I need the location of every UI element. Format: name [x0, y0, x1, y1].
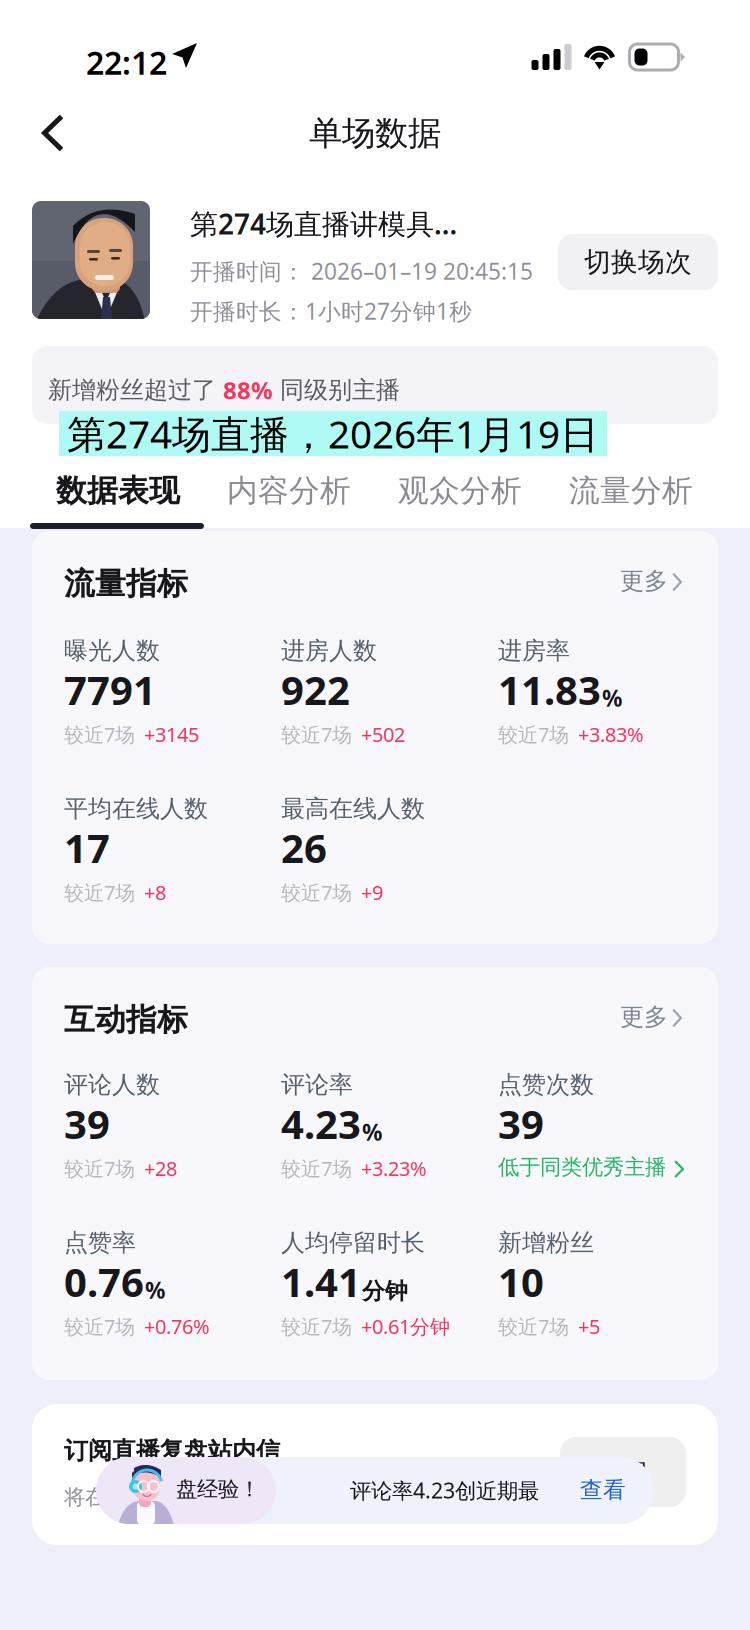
staticText: 较近7场: [281, 1155, 352, 1182]
staticText: 较近7场: [498, 1313, 569, 1340]
button[interactable]: 流量分析: [543, 472, 719, 534]
staticText: 22:12: [86, 41, 167, 83]
button[interactable]: 观众分析: [372, 472, 548, 534]
staticText: 流量分析: [569, 472, 693, 510]
staticText: 新增粉丝超过了: [48, 375, 223, 405]
staticText: +8: [144, 879, 166, 906]
staticText: 开播时间： 2026–01–19 20:45:15: [190, 256, 533, 286]
staticText: 10: [498, 1255, 544, 1308]
staticText: 最高在线人数: [281, 794, 425, 823]
staticText: 更多: [620, 1002, 668, 1032]
staticText: 平均在线人数: [64, 794, 208, 823]
staticText: 11.83: [498, 663, 601, 716]
staticText: %: [145, 1275, 165, 1305]
staticText: 订阅直播复盘站内信: [64, 1436, 280, 1465]
staticText: 同级别主播: [273, 375, 400, 405]
staticText: +28: [144, 1155, 177, 1182]
staticText: +3.83%: [578, 721, 644, 748]
staticText: 评论率4.23创近期最: [350, 1476, 539, 1504]
staticText: 观众分析: [398, 472, 522, 510]
staticText: 较近7场: [281, 879, 352, 906]
staticText: +0.61分钟: [361, 1313, 450, 1340]
staticText: 将在每场直播结束后推送: [64, 1484, 295, 1510]
staticText: 4.23: [281, 1097, 361, 1150]
staticText: 较近7场: [498, 721, 569, 748]
staticText: +9: [361, 879, 383, 906]
staticText: 低于同类优秀主播: [498, 1154, 666, 1180]
staticText: +3145: [144, 721, 199, 748]
staticText: 39: [64, 1097, 110, 1150]
staticText: 较近7场: [281, 1313, 352, 1340]
staticText: 17: [64, 821, 110, 874]
staticText: 进房人数: [281, 636, 377, 665]
button[interactable]: 更多: [610, 999, 682, 1035]
staticText: 单场数据: [309, 113, 441, 154]
staticText: 查看: [580, 1476, 626, 1504]
staticText: 进房率: [498, 636, 570, 665]
staticText: 26: [281, 821, 327, 874]
staticText: 较近7场: [64, 1313, 135, 1340]
staticText: %: [602, 683, 622, 713]
staticText: 较近7场: [64, 721, 135, 748]
staticText: 0.76: [64, 1255, 144, 1308]
staticText: +5: [578, 1313, 600, 1340]
staticText: 评论人数: [64, 1070, 160, 1099]
staticText: 评论率: [281, 1070, 353, 1099]
staticText: 第274场直播，2026年1月19日: [67, 408, 599, 459]
staticText: 88%: [223, 374, 273, 406]
staticText: 流量指标: [64, 565, 188, 603]
staticText: 1.41: [281, 1255, 361, 1308]
button[interactable]: 内容分析: [201, 472, 377, 534]
staticText: 7791: [64, 663, 156, 716]
staticText: 分钟: [362, 1277, 408, 1305]
staticText: 切换场次: [584, 246, 692, 278]
staticText: 较近7场: [281, 721, 352, 748]
staticText: +3.23%: [361, 1155, 427, 1182]
staticText: 曝光人数: [64, 636, 160, 665]
staticText: 盘经验！: [176, 1476, 260, 1502]
staticText: +0.76%: [144, 1313, 210, 1340]
staticText: 互动指标: [64, 1001, 188, 1039]
staticText: %: [362, 1117, 382, 1147]
button[interactable]: 数据表现: [30, 472, 206, 534]
button[interactable]: 查看: [573, 1470, 633, 1510]
button[interactable]: 更多: [610, 563, 682, 599]
staticText: 39: [498, 1097, 544, 1150]
staticText: 开播时长：1小时27分钟1秒: [190, 296, 472, 326]
staticText: 点赞次数: [498, 1070, 594, 1099]
staticText: 新增粉丝: [498, 1228, 594, 1257]
staticText: 数据表现: [56, 472, 180, 510]
staticText: 较近7场: [64, 879, 135, 906]
staticText: 点赞率: [64, 1228, 136, 1257]
staticText: 第274场直播讲模具…: [190, 205, 457, 242]
staticText: 更多: [620, 566, 668, 596]
staticText: 922: [281, 663, 350, 716]
staticText: 较近7场: [64, 1155, 135, 1182]
staticText: +502: [361, 721, 405, 748]
button[interactable]: 返回: [22, 102, 84, 164]
staticText: 内容分析: [227, 472, 351, 510]
staticText: 订阅: [599, 1457, 647, 1487]
button[interactable]: 切换场次: [558, 234, 718, 290]
staticText: 人均停留时长: [281, 1228, 425, 1257]
button[interactable]: 订阅: [560, 1437, 686, 1507]
